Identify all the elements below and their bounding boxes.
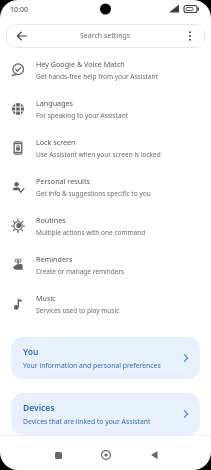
button[interactable]: Search settings bbox=[6, 24, 205, 48]
staticText: Use Assistant when your screen is locked bbox=[36, 150, 161, 159]
staticText: Music bbox=[36, 293, 56, 303]
staticText: Reminders bbox=[36, 254, 73, 264]
staticText: Routines bbox=[36, 215, 66, 225]
staticText: Lock screen bbox=[36, 137, 76, 147]
staticText: Languages bbox=[36, 98, 74, 108]
staticText: Services used to play music bbox=[36, 306, 120, 315]
button[interactable] bbox=[48, 445, 68, 465]
staticText: Create or manage reminders bbox=[36, 267, 125, 276]
button[interactable]: Languages bbox=[0, 89, 211, 128]
staticText: Hey Google & Voice Match bbox=[36, 59, 125, 69]
button[interactable]: Reminders bbox=[0, 245, 211, 284]
button[interactable]: Personal results bbox=[0, 167, 211, 206]
staticText: Get info & suggestions specific to you bbox=[36, 189, 151, 198]
staticText: Get hands-free help from your Assistant bbox=[36, 72, 158, 81]
button[interactable]: Music bbox=[0, 284, 211, 323]
button[interactable]: You bbox=[11, 337, 200, 379]
button[interactable]: Hey Google & Voice Match bbox=[0, 50, 211, 89]
staticText: Personal results bbox=[36, 176, 91, 186]
staticText: For speaking to your Assistant bbox=[36, 111, 129, 120]
staticText: Multiple actions with one command bbox=[36, 228, 146, 237]
button[interactable]: Routines bbox=[0, 206, 211, 245]
staticText: 10:00 bbox=[10, 5, 28, 15]
staticText: Search settings bbox=[80, 31, 131, 41]
button[interactable] bbox=[144, 445, 164, 465]
button[interactable]: Lock screen bbox=[0, 128, 211, 167]
staticText: Devices that are linked to your Assistan… bbox=[23, 417, 151, 426]
button[interactable] bbox=[17, 31, 27, 41]
button[interactable]: Devices bbox=[11, 393, 200, 435]
staticText: You bbox=[23, 346, 39, 358]
button[interactable] bbox=[188, 31, 192, 41]
staticText: Your information and personal preference… bbox=[23, 361, 161, 370]
button[interactable] bbox=[96, 445, 116, 465]
staticText: Devices bbox=[23, 402, 55, 414]
